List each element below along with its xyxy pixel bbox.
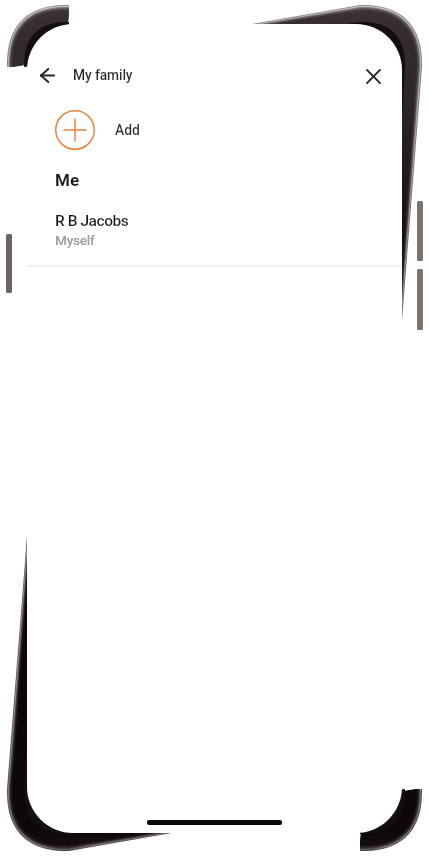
button[interactable]: Add	[27, 100, 402, 160]
staticText: R B Jacobs	[55, 212, 129, 230]
staticText: Myself	[55, 232, 95, 248]
button[interactable]: R B Jacobs	[27, 212, 402, 258]
staticText: My family	[73, 67, 133, 83]
button[interactable]: Back	[27, 55, 67, 95]
staticText: Me	[55, 170, 80, 190]
button[interactable]: Close	[353, 56, 393, 96]
staticText: Add	[115, 122, 140, 138]
